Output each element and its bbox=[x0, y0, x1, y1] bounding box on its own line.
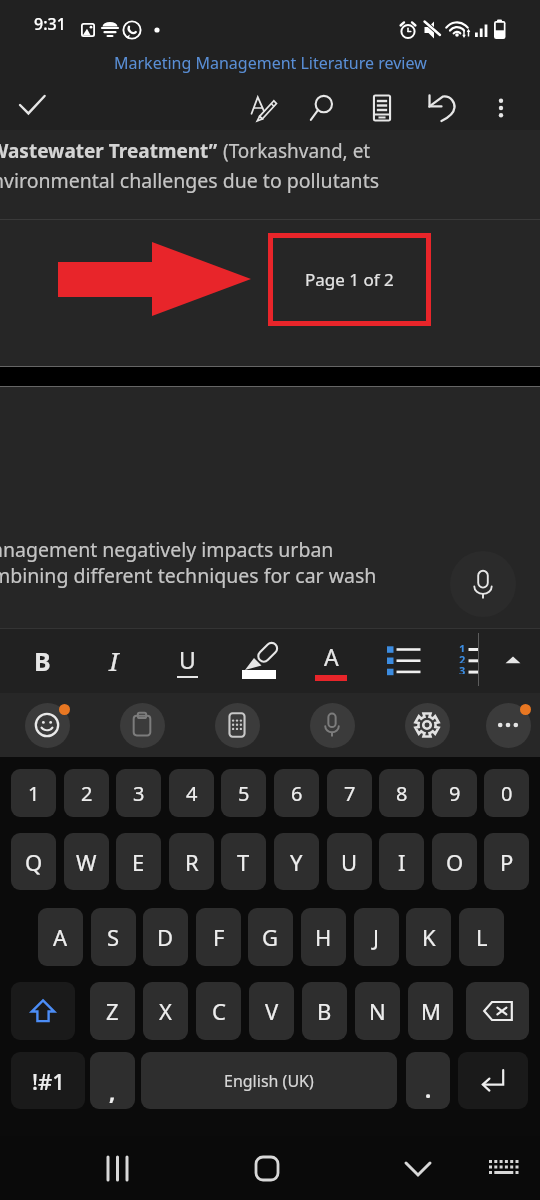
button[interactable]: More options bbox=[476, 80, 526, 130]
staticText: 9:31 bbox=[34, 13, 66, 35]
button[interactable]: 7 bbox=[327, 769, 372, 817]
staticText: S bbox=[107, 922, 120, 952]
button[interactable]: 8 bbox=[379, 769, 424, 817]
button[interactable]: N bbox=[355, 982, 400, 1040]
button[interactable]: Voice typing bbox=[306, 693, 358, 757]
staticText: H bbox=[315, 922, 332, 952]
staticText: (Torkashvand, et bbox=[218, 138, 371, 164]
button[interactable]: Symbols bbox=[11, 1052, 85, 1109]
button[interactable]: 6 bbox=[274, 769, 319, 817]
staticText: O bbox=[446, 847, 464, 877]
button[interactable]: Bold bbox=[12, 628, 72, 693]
button[interactable]: F bbox=[196, 908, 241, 966]
staticText: D bbox=[157, 922, 174, 952]
staticText: P bbox=[500, 847, 514, 877]
button[interactable]: Emoji bbox=[21, 693, 73, 757]
staticText: W bbox=[76, 847, 97, 877]
button[interactable]: 9 bbox=[432, 769, 477, 817]
button[interactable]: 2 bbox=[64, 769, 109, 817]
button[interactable]: Period bbox=[406, 1052, 450, 1109]
button[interactable]: T bbox=[221, 833, 266, 890]
staticText: 9 bbox=[449, 780, 461, 807]
staticText: E bbox=[132, 847, 145, 877]
button[interactable]: X bbox=[143, 982, 188, 1040]
button[interactable]: P bbox=[484, 833, 529, 890]
staticText: F bbox=[213, 922, 225, 952]
button[interactable]: I bbox=[379, 833, 424, 890]
button[interactable]: 0 bbox=[484, 769, 529, 817]
staticText: K bbox=[422, 922, 436, 952]
button[interactable]: Collapse toolbar bbox=[483, 628, 540, 693]
button[interactable]: Font colour bbox=[301, 628, 361, 693]
button[interactable]: Highlight bbox=[232, 628, 288, 693]
button[interactable]: Underline bbox=[157, 628, 217, 693]
button[interactable]: Settings bbox=[401, 693, 453, 757]
button[interactable]: C bbox=[196, 982, 241, 1040]
button[interactable]: Clipboard bbox=[116, 693, 168, 757]
button[interactable]: 5 bbox=[221, 769, 266, 817]
button[interactable]: 4 bbox=[169, 769, 214, 817]
button[interactable]: Marketing Management Literature review bbox=[0, 46, 540, 80]
staticText: 7 bbox=[344, 780, 356, 807]
staticText: U bbox=[179, 644, 196, 675]
staticText: 4 bbox=[186, 780, 198, 807]
button[interactable]: Switch keyboard bbox=[477, 1142, 529, 1194]
button[interactable]: Stickers bbox=[211, 693, 263, 757]
staticText: B bbox=[34, 644, 51, 678]
button[interactable]: 1 bbox=[11, 769, 56, 817]
button[interactable]: Shift bbox=[11, 982, 75, 1040]
staticText: R bbox=[185, 847, 199, 877]
staticText: 1 bbox=[28, 780, 40, 807]
button[interactable]: S bbox=[91, 908, 136, 966]
staticText: B bbox=[317, 996, 332, 1026]
button[interactable]: A bbox=[38, 908, 83, 966]
button[interactable]: Y bbox=[274, 833, 319, 890]
button[interactable]: Search bbox=[297, 80, 347, 130]
button[interactable]: E bbox=[116, 833, 161, 890]
button[interactable]: U bbox=[327, 833, 372, 890]
button[interactable]: Numbered list bbox=[440, 628, 496, 693]
button[interactable]: V bbox=[249, 982, 294, 1040]
button[interactable]: R bbox=[169, 833, 214, 890]
button[interactable]: H bbox=[301, 908, 346, 966]
staticText: . bbox=[425, 1074, 432, 1104]
button[interactable]: W bbox=[64, 833, 109, 890]
button[interactable]: Z bbox=[90, 982, 135, 1040]
button[interactable]: Undo bbox=[417, 80, 467, 130]
staticText: 8 bbox=[396, 780, 408, 807]
button[interactable]: B bbox=[302, 982, 347, 1040]
button[interactable]: Q bbox=[11, 833, 56, 890]
staticText: L bbox=[476, 922, 488, 952]
staticText: V bbox=[265, 996, 279, 1026]
button[interactable]: Italic bbox=[84, 628, 144, 693]
button[interactable]: Space bbox=[141, 1052, 397, 1109]
staticText: 2 bbox=[81, 780, 93, 807]
button[interactable]: M bbox=[408, 982, 453, 1040]
button[interactable]: L bbox=[459, 908, 504, 966]
button[interactable]: Bulleted list bbox=[373, 628, 433, 693]
button[interactable]: K bbox=[406, 908, 451, 966]
staticText: !#1 bbox=[32, 1066, 65, 1096]
button[interactable]: Dictate bbox=[450, 551, 516, 617]
button[interactable]: G bbox=[248, 908, 293, 966]
button[interactable]: Done bbox=[8, 80, 56, 130]
button[interactable]: Recent apps bbox=[91, 1142, 143, 1194]
button[interactable]: Enter bbox=[458, 1052, 528, 1109]
button[interactable]: Read view bbox=[357, 80, 407, 130]
staticText: 0 bbox=[501, 780, 513, 807]
staticText: C bbox=[212, 996, 226, 1026]
staticText: X bbox=[159, 996, 172, 1026]
button[interactable]: J bbox=[354, 908, 399, 966]
button[interactable]: Backspace bbox=[466, 982, 529, 1040]
button[interactable]: O bbox=[432, 833, 477, 890]
staticText: 2 bbox=[459, 652, 466, 663]
button[interactable]: Hide keyboard bbox=[392, 1142, 444, 1194]
button[interactable]: 3 bbox=[116, 769, 161, 817]
button[interactable]: Format text bbox=[239, 80, 289, 130]
staticText: anagement negatively impacts urban bbox=[0, 536, 334, 563]
button[interactable]: Home bbox=[241, 1142, 293, 1194]
button[interactable]: D bbox=[143, 908, 188, 966]
button[interactable]: Comma bbox=[90, 1052, 135, 1109]
staticText: I bbox=[109, 643, 119, 678]
button[interactable]: More bbox=[482, 693, 534, 757]
